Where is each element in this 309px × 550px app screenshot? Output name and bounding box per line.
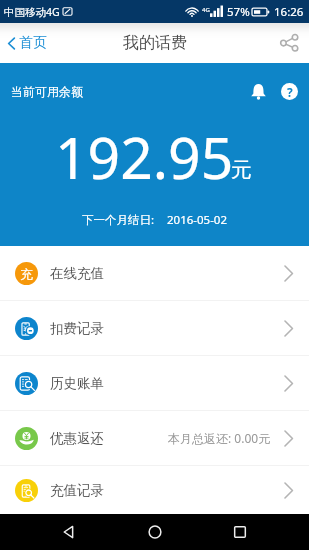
staticText: 2016-05-02 <box>167 212 228 228</box>
staticText: 当前可用余额 <box>11 84 83 99</box>
staticText: 16:26 <box>274 4 304 20</box>
staticText: 首页 <box>19 34 47 52</box>
button[interactable]: Share <box>273 26 305 58</box>
button[interactable]: 历史账单 <box>0 356 309 410</box>
staticText: 4G <box>202 6 210 14</box>
button[interactable]: 充 <box>0 246 309 300</box>
button[interactable]: Home <box>138 515 172 549</box>
staticText: 扣费记录 <box>50 320 104 337</box>
button[interactable]: 优惠返还 <box>0 411 309 465</box>
button[interactable]: 充值记录 <box>0 466 309 514</box>
staticText: 下一个月结日: <box>82 212 155 228</box>
staticText: 优惠返还 <box>50 430 104 447</box>
button[interactable]: 扣费记录 <box>0 301 309 355</box>
staticText: 本月总返还: 0.00元 <box>168 430 271 446</box>
staticText: 中国移动4G <box>4 5 60 19</box>
staticText: 在线充值 <box>50 265 104 282</box>
staticText: 57% <box>227 4 250 20</box>
button[interactable]: 首页 <box>0 26 53 60</box>
staticText: 元 <box>231 157 252 183</box>
button[interactable]: Help <box>277 79 302 104</box>
staticText: 充 <box>20 266 33 282</box>
staticText: 我的话费 <box>123 33 187 53</box>
button[interactable]: Notifications <box>246 79 271 104</box>
staticText: 192.95 <box>55 118 234 196</box>
button[interactable]: Recents <box>223 515 257 549</box>
staticText: 充值记录 <box>50 482 104 499</box>
button[interactable]: Back <box>52 515 86 549</box>
staticText: 历史账单 <box>50 375 104 392</box>
staticText: ? <box>287 84 293 100</box>
